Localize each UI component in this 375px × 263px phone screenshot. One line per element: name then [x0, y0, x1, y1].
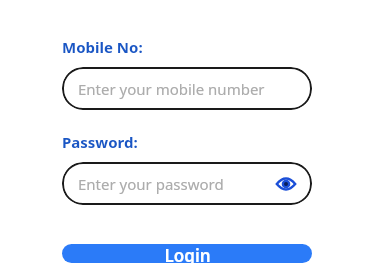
button[interactable]: Show password	[276, 174, 296, 194]
staticText: Password:	[62, 132, 138, 152]
button[interactable]: Enter your password	[62, 162, 312, 205]
staticText: Enter your mobile number	[78, 79, 265, 99]
staticText: Mobile No:	[62, 37, 143, 57]
button[interactable]: Login	[62, 244, 312, 263]
staticText: Login	[164, 244, 211, 263]
staticText: Enter your password	[78, 174, 224, 194]
button[interactable]: Enter your mobile number	[62, 67, 312, 110]
